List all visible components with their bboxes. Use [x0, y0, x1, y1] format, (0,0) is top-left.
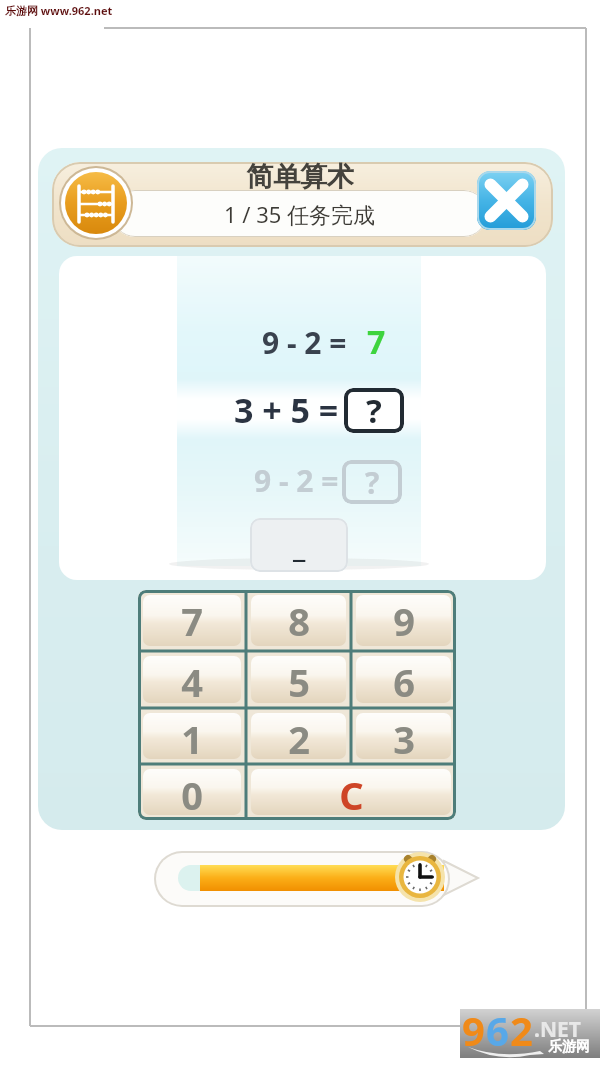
button[interactable]: 6	[356, 656, 451, 703]
button[interactable]	[58, 165, 134, 241]
button[interactable]: 5	[251, 656, 346, 703]
staticText: 9 - 2 =	[262, 322, 347, 363]
staticText: 9 - 2 =	[254, 460, 339, 501]
staticText: _	[293, 525, 306, 566]
staticText: 乐游网	[548, 1038, 590, 1056]
staticText: 6	[486, 1003, 509, 1052]
staticText: 9	[462, 1003, 485, 1052]
button[interactable]: 4	[143, 656, 241, 703]
staticText: 乐游网 www.962.net	[5, 3, 113, 18]
staticText: 6	[393, 656, 415, 703]
button[interactable]: 7	[143, 595, 241, 646]
staticText: ?	[366, 388, 382, 433]
button[interactable]: 2	[251, 713, 346, 759]
staticText: 2	[288, 713, 310, 759]
staticText: 7	[367, 320, 386, 364]
button[interactable]: 8	[251, 595, 346, 646]
staticText: 4	[181, 656, 203, 703]
staticText: 5	[288, 656, 310, 703]
staticText: 7	[181, 595, 203, 646]
staticText: 1	[181, 713, 203, 759]
staticText: 9	[393, 595, 415, 646]
button[interactable]: 1	[143, 713, 241, 759]
staticText: 3	[393, 713, 415, 759]
staticText: 8	[288, 595, 310, 646]
staticText: 1 / 35 任务完成	[224, 199, 376, 229]
button[interactable]: C	[251, 769, 451, 815]
staticText: 0	[181, 769, 203, 815]
button[interactable]: 0	[143, 769, 241, 815]
button[interactable]: 3	[356, 713, 451, 759]
staticText: C	[339, 769, 364, 815]
button[interactable]	[477, 171, 536, 230]
staticText: 简单算术	[246, 160, 354, 192]
staticText: ?	[365, 462, 380, 503]
staticText: 3 + 5 =	[234, 387, 339, 433]
button[interactable]: 9	[356, 595, 451, 646]
staticText: .NET	[534, 1015, 581, 1044]
staticText: 2	[510, 1003, 533, 1052]
